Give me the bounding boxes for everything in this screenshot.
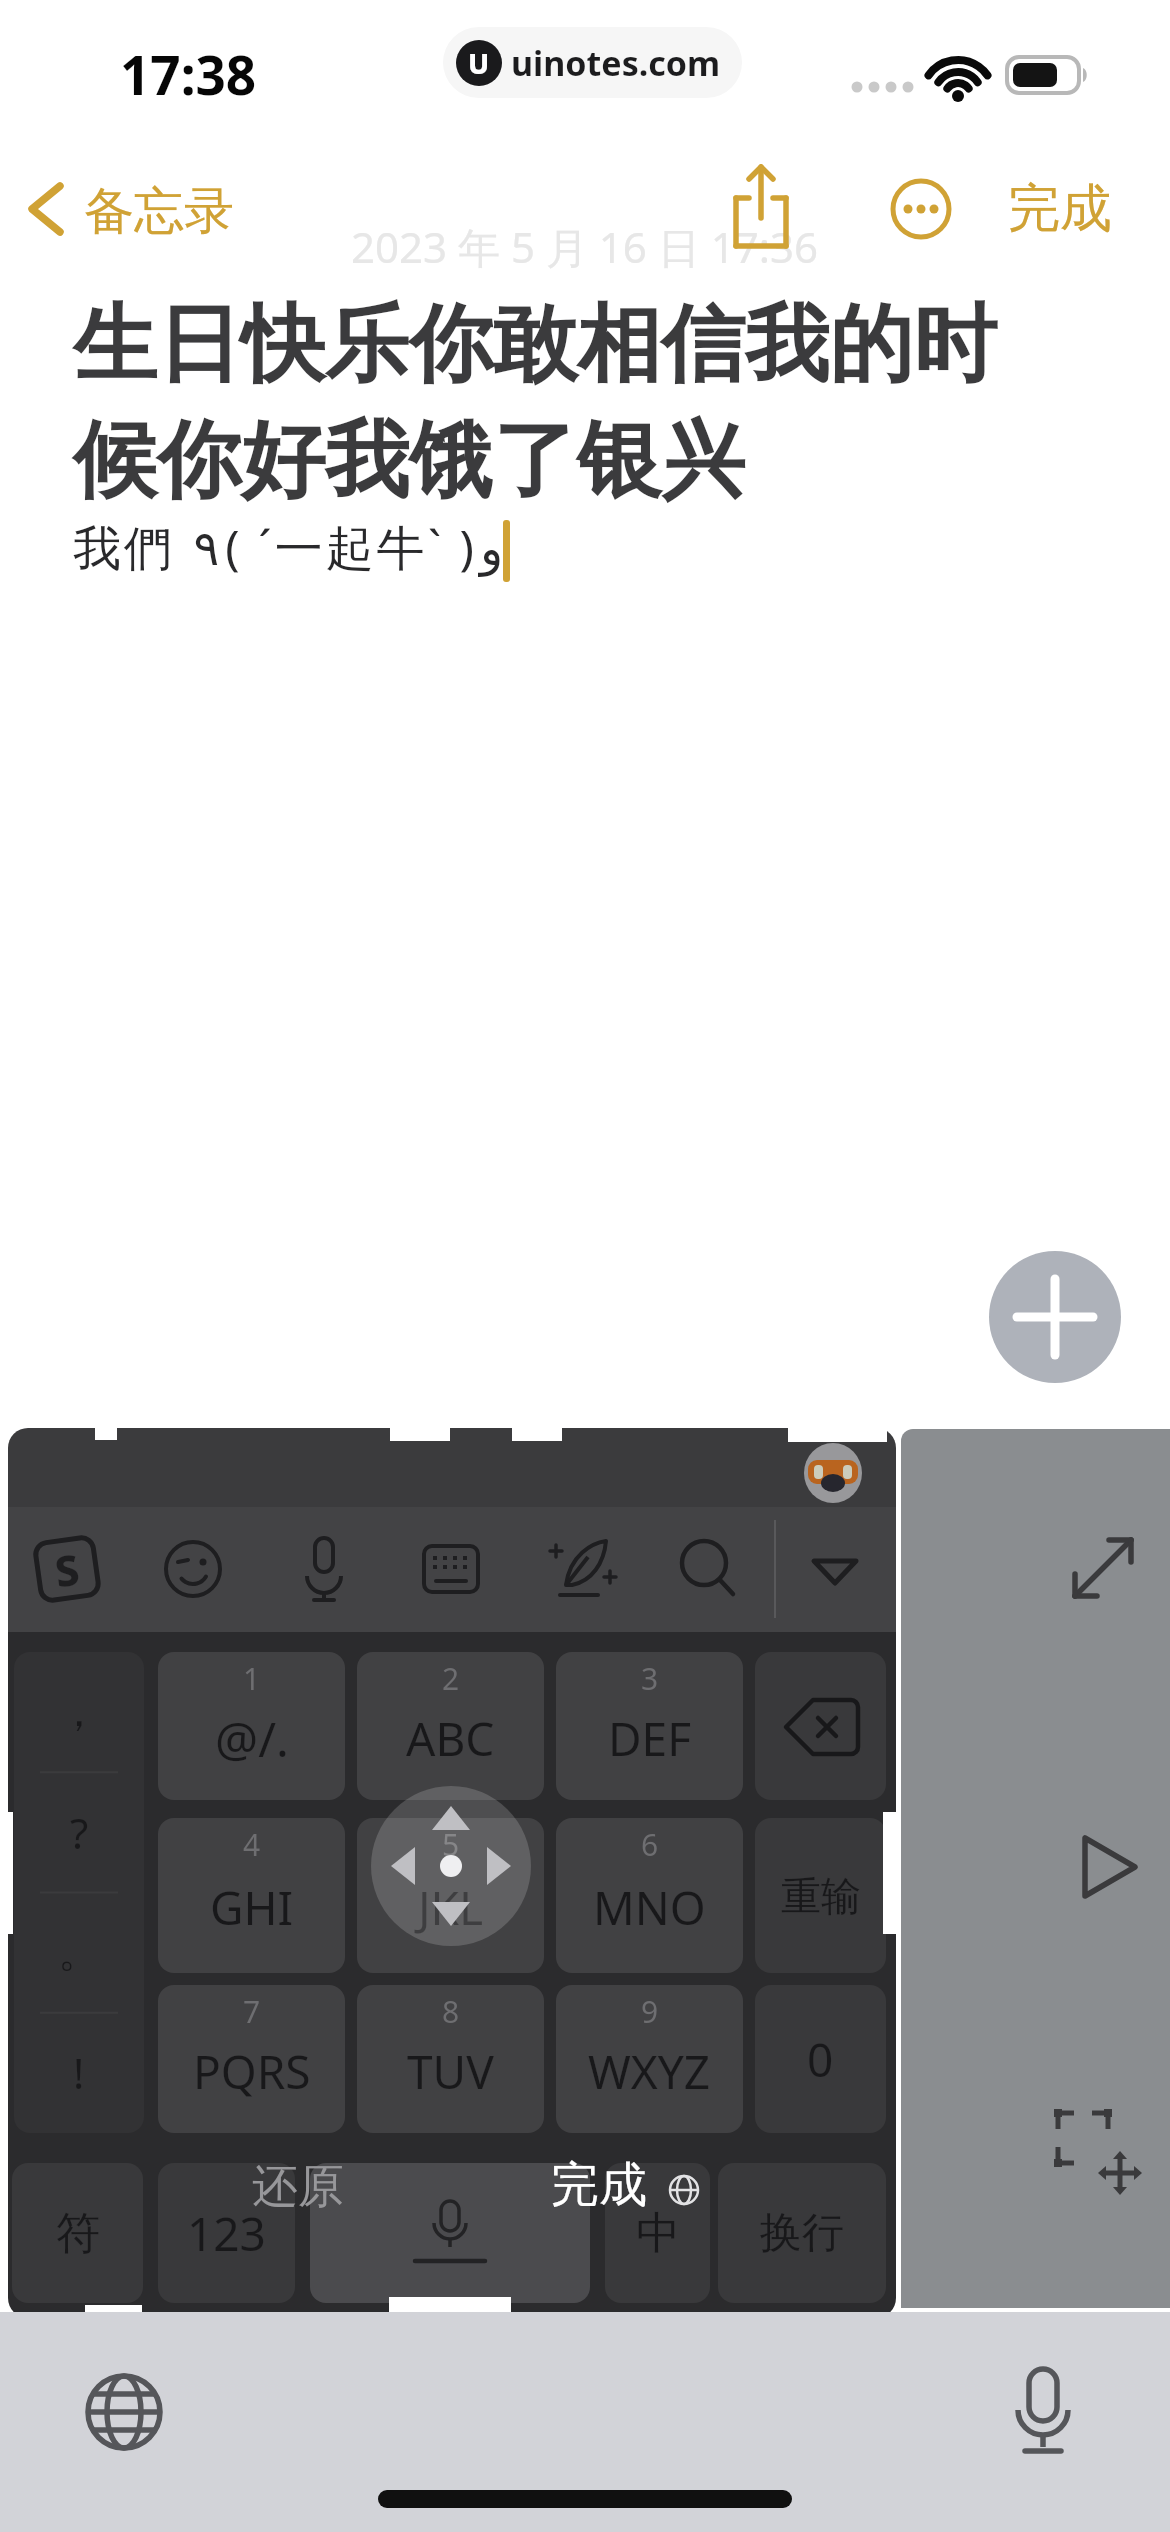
button[interactable]: 0	[755, 1985, 886, 2133]
button[interactable]: 8	[357, 1985, 544, 2133]
button[interactable]	[676, 1537, 740, 1601]
staticText: 还原	[252, 2158, 344, 2216]
staticText: GHI	[210, 1876, 294, 1939]
staticText: !	[73, 2044, 85, 2101]
button[interactable]	[755, 1652, 886, 1800]
button[interactable]: 重输	[755, 1818, 886, 1973]
staticText: 换行	[760, 2207, 844, 2260]
staticText: 2023 年 5 月 16 日 17:36	[351, 218, 819, 275]
staticText: uinotes.com	[511, 40, 721, 86]
staticText: 2	[442, 1658, 460, 1699]
staticText: MNO	[593, 1876, 706, 1939]
button[interactable]: 4	[158, 1818, 345, 1973]
staticText: DEF	[608, 1707, 692, 1770]
button[interactable]: 123	[158, 2163, 295, 2303]
button[interactable]	[989, 1251, 1121, 1383]
staticText: JKL	[418, 1876, 484, 1939]
button[interactable]	[722, 160, 802, 255]
button[interactable]: 6	[556, 1818, 743, 1973]
staticText: 9	[641, 1991, 659, 2032]
staticText: 完成	[1008, 176, 1112, 242]
button[interactable]	[1050, 2105, 1150, 2201]
staticText: ?	[70, 1804, 89, 1861]
button[interactable]: 7	[158, 1985, 345, 2133]
staticText: 6	[641, 1824, 659, 1865]
staticText: 17:38	[120, 38, 257, 110]
staticText: 7	[243, 1991, 261, 2032]
button[interactable]	[310, 2163, 590, 2303]
staticText: 123	[187, 2202, 266, 2265]
button[interactable]	[890, 178, 952, 240]
staticText: 完成	[551, 2155, 647, 2215]
button[interactable]	[548, 1535, 618, 1603]
staticText: 0	[807, 2028, 834, 2091]
button[interactable]: 1	[158, 1652, 345, 1800]
staticText: TUV	[407, 2040, 494, 2103]
staticText: 4	[243, 1824, 261, 1865]
staticText: 生日快乐你敢相信我的时候你好我饿了银兴	[73, 292, 1018, 514]
staticText: 中	[636, 2206, 680, 2261]
button[interactable]: 3	[556, 1652, 743, 1800]
staticText: 8	[442, 1991, 460, 2032]
staticText: ABC	[406, 1707, 495, 1770]
button[interactable]: 9	[556, 1985, 743, 2133]
staticText: 备忘录	[84, 180, 234, 243]
staticText: S	[51, 1540, 83, 1599]
button[interactable]	[422, 1541, 480, 1597]
staticText: 1	[243, 1658, 261, 1699]
staticText: WXYZ	[588, 2040, 711, 2103]
button[interactable]	[84, 2372, 164, 2452]
staticText: 3	[641, 1658, 659, 1699]
button[interactable]: 符	[12, 2163, 143, 2303]
button[interactable]: 2	[357, 1652, 544, 1800]
button[interactable]	[1055, 1520, 1151, 1616]
button[interactable]: 完成	[1008, 176, 1112, 242]
staticText: 5	[442, 1824, 460, 1865]
button[interactable]	[1003, 2365, 1083, 2460]
button[interactable]: 中	[605, 2163, 710, 2303]
button[interactable]	[803, 1442, 863, 1504]
button[interactable]: 备忘录	[20, 176, 250, 240]
button[interactable]	[294, 1534, 354, 1604]
button[interactable]: S	[27, 1529, 107, 1609]
staticText: 符	[56, 2206, 100, 2261]
button[interactable]	[804, 1549, 866, 1593]
staticText: 我們 ‎٩‎( ´一起牛` )‎و‎	[73, 514, 510, 580]
staticText: 重输	[781, 1871, 861, 1921]
staticText: @/.	[215, 1706, 289, 1771]
button[interactable]: U	[456, 27, 721, 98]
staticText: U	[468, 44, 490, 82]
button[interactable]: 5	[357, 1818, 544, 1973]
staticText: PQRS	[193, 2040, 311, 2103]
button[interactable]	[1075, 1832, 1145, 1902]
button[interactable]	[160, 1536, 226, 1602]
button[interactable]: 换行	[718, 2163, 886, 2303]
